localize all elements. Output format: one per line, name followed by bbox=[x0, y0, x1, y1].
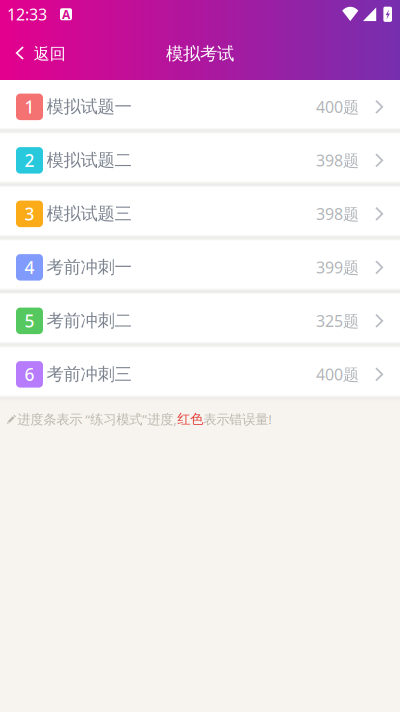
button[interactable]: 6 bbox=[0, 347, 400, 396]
staticText: 4 bbox=[24, 256, 34, 279]
staticText: 400题 bbox=[316, 96, 359, 117]
button[interactable]: 5 bbox=[0, 294, 400, 342]
button[interactable]: 返回 bbox=[0, 26, 80, 80]
staticText: 红色 bbox=[177, 411, 203, 427]
staticText: 398题 bbox=[316, 203, 359, 224]
button[interactable]: 4 bbox=[0, 240, 400, 289]
staticText: 模拟考试 bbox=[166, 43, 234, 64]
button[interactable]: 2 bbox=[0, 133, 400, 182]
staticText: 2 bbox=[24, 149, 34, 172]
staticText: 1 bbox=[24, 95, 34, 118]
staticText: 5 bbox=[24, 309, 34, 332]
staticText: 考前冲刺一 bbox=[46, 257, 131, 278]
staticText: 模拟试题一 bbox=[46, 96, 131, 117]
staticText: 模拟试题三 bbox=[46, 203, 131, 224]
staticText: 模拟试题二 bbox=[46, 150, 131, 171]
staticText: 返回 bbox=[34, 44, 66, 64]
staticText: A bbox=[62, 6, 70, 22]
staticText: 12:33 bbox=[7, 4, 47, 25]
button[interactable]: 3 bbox=[0, 187, 400, 235]
button[interactable]: 1 bbox=[0, 80, 400, 128]
staticText: 399题 bbox=[316, 257, 359, 278]
staticText: 表示错误量! bbox=[203, 410, 272, 428]
staticText: 考前冲刺二 bbox=[46, 310, 131, 331]
staticText: 6 bbox=[24, 363, 34, 386]
staticText: 进度条表示 “练习模式”进度, bbox=[17, 410, 177, 428]
staticText: 398题 bbox=[316, 150, 359, 171]
staticText: 325题 bbox=[316, 310, 359, 331]
staticText: 考前冲刺三 bbox=[46, 364, 131, 385]
staticText: 3 bbox=[24, 202, 34, 225]
staticText: 400题 bbox=[316, 364, 359, 385]
